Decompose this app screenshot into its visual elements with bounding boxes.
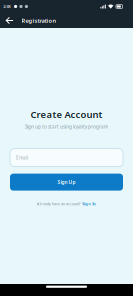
staticText: Sign In	[82, 201, 96, 206]
button[interactable]: Already have an account?	[37, 200, 96, 208]
staticText: Registration	[21, 17, 56, 24]
staticText: Sign Up	[57, 179, 75, 185]
staticText: Create Account	[30, 108, 102, 121]
staticText: Sign up to start using loyalty program	[25, 124, 108, 130]
button[interactable]: Back	[4, 13, 16, 27]
staticText: Email	[16, 154, 28, 161]
staticText: 2:38	[3, 4, 10, 9]
staticText: Already have an account?	[37, 201, 81, 206]
button[interactable]: Sign Up	[0, 174, 133, 191]
